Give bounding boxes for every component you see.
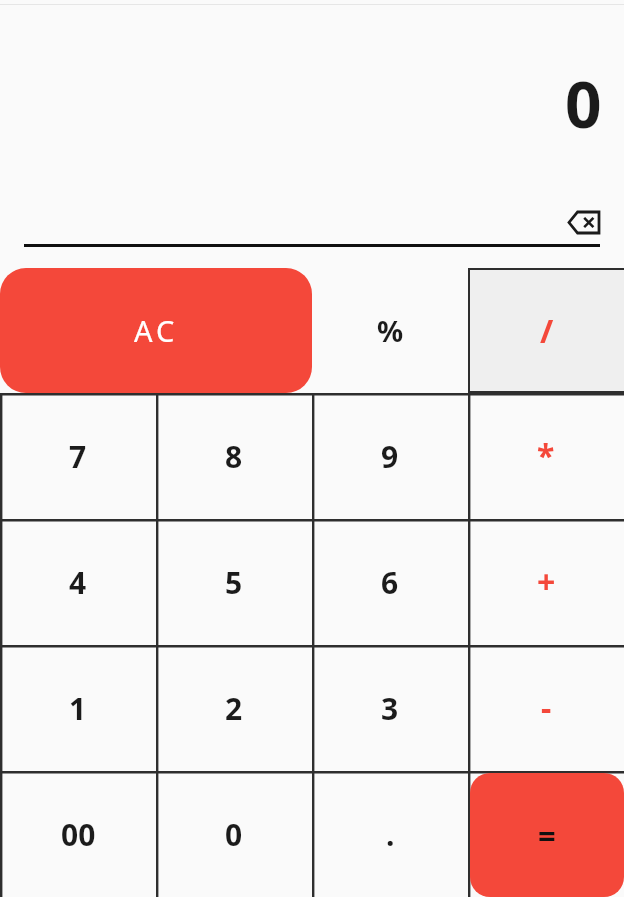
staticText: - [541,686,552,730]
button[interactable]: 8 [156,393,312,519]
button[interactable]: 6 [312,519,468,645]
staticText: 5 [225,562,243,603]
button[interactable]: - [468,645,624,771]
staticText: AC [134,311,179,350]
button[interactable]: 0 [156,771,312,897]
staticText: 4 [69,562,87,603]
staticText: 2 [225,688,243,729]
staticText: / [540,309,554,353]
button[interactable]: AC [0,268,312,393]
staticText: . [386,814,395,855]
button[interactable]: 00 [0,771,156,897]
button[interactable]: 3 [312,645,468,771]
staticText: 9 [381,436,399,477]
staticText: 00 [61,814,96,855]
staticText: 8 [225,436,243,477]
button[interactable]: 7 [0,393,156,519]
staticText: 7 [69,436,87,477]
button[interactable]: . [312,771,468,897]
button[interactable]: + [468,519,624,645]
button[interactable]: % [312,268,468,393]
staticText: 1 [69,688,87,729]
staticText: 0 [225,814,243,855]
staticText: 0 [565,60,602,147]
button[interactable]: 1 [0,645,156,771]
button[interactable]: / [470,270,624,391]
staticText: * [537,434,555,478]
button[interactable]: * [468,393,624,519]
staticText: 6 [381,562,399,603]
button[interactable]: 4 [0,519,156,645]
staticText: 3 [381,688,399,729]
button[interactable]: 2 [156,645,312,771]
staticText: = [538,814,556,856]
staticText: % [377,311,404,350]
button[interactable]: = [470,773,624,897]
button[interactable]: 9 [312,393,468,519]
button[interactable]: Backspace [566,208,602,236]
staticText: + [537,560,556,604]
button[interactable]: 5 [156,519,312,645]
